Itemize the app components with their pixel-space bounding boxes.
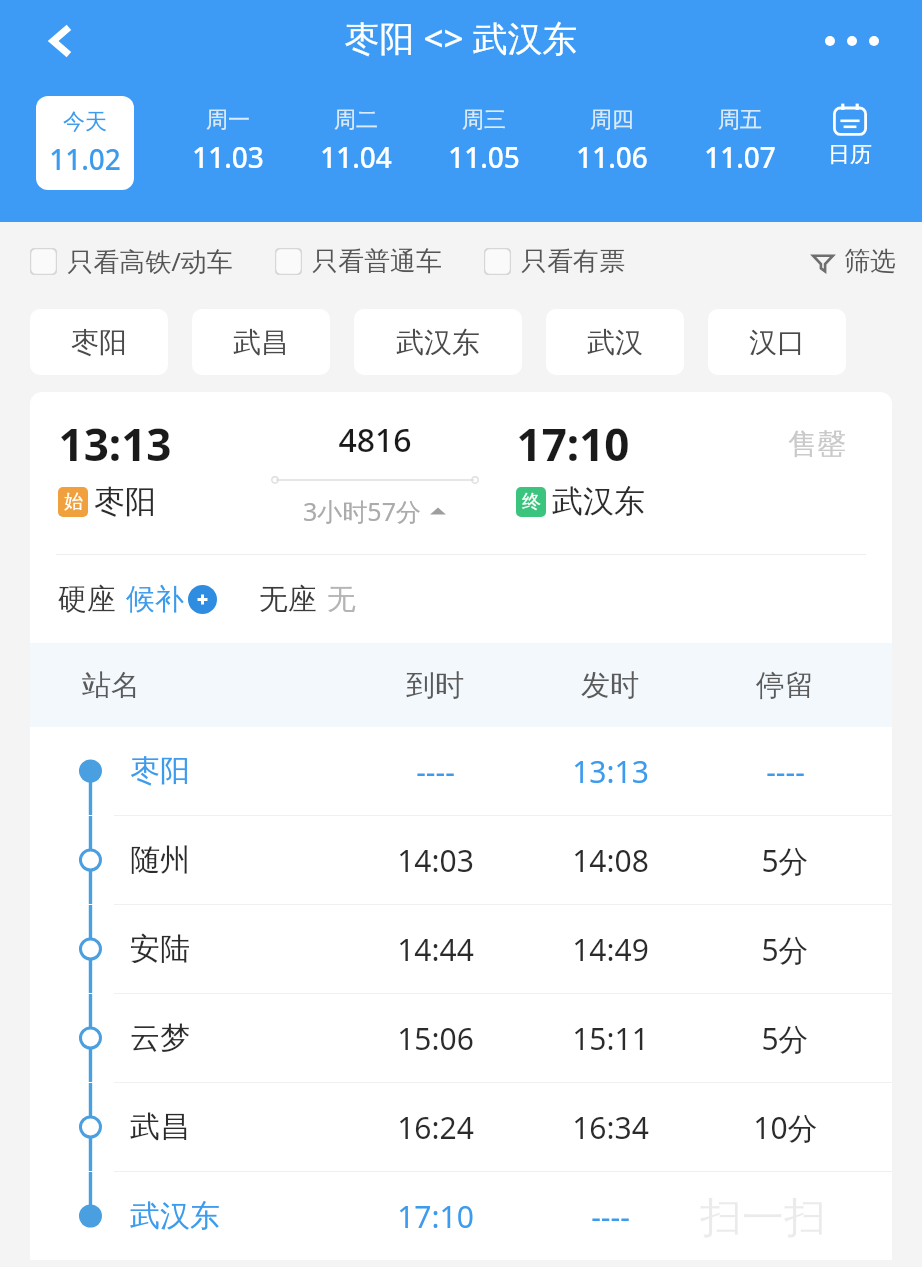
button[interactable]: 只看普通车 [275,237,442,286]
button[interactable]: Back [26,6,96,76]
staticText: 武汉东 [396,325,480,360]
staticText: 16:24 [397,1107,474,1148]
staticText: 站名 [82,667,140,704]
button[interactable]: 周四 [548,96,676,190]
staticText: 15:06 [397,1018,474,1059]
staticText: 4816 [338,418,412,462]
button[interactable]: 汉口 [708,309,846,375]
button[interactable]: 枣阳 [30,727,892,815]
staticText: 只看普通车 [312,245,442,278]
staticText: 到时 [406,667,464,704]
button[interactable]: 周二 [292,96,420,190]
button[interactable]: 随州 [30,816,892,904]
staticText: 11.07 [704,138,776,176]
button[interactable]: 武汉东 [354,309,522,375]
staticText: 14:08 [572,840,649,881]
staticText: 安陆 [130,930,190,968]
staticText: 候补 [126,581,184,618]
staticText: 14:44 [397,929,474,970]
staticText: 无座 [259,581,317,618]
staticText: ---- [416,751,455,792]
staticText: 停留 [756,667,814,704]
staticText: 3小时57分 [303,494,421,528]
staticText: 周二 [334,106,378,134]
staticText: 5分 [761,840,809,881]
staticText: 武昌 [130,1108,190,1146]
staticText: 武汉东 [130,1197,220,1235]
button[interactable]: 武汉 [546,309,684,375]
button[interactable]: 云梦 [30,994,892,1082]
staticText: 始 [64,490,83,514]
staticText: 5分 [761,1018,809,1059]
staticText: 武昌 [233,325,289,360]
staticText: 云梦 [130,1019,190,1057]
staticText: 11.06 [576,138,648,176]
staticText: 周四 [590,106,634,134]
staticText: 日历 [828,141,872,169]
staticText: 只看高铁/动车 [67,243,233,279]
staticText: 枣阳 [130,752,190,790]
staticText: 发时 [581,667,639,704]
staticText: 13:13 [58,414,172,474]
button[interactable]: 只看高铁/动车 [30,235,233,287]
staticText: 筛选 [844,245,896,278]
staticText: 硬座 [58,581,116,618]
button[interactable]: 周三 [420,96,548,190]
staticText: ---- [591,1196,630,1237]
staticText: 11.02 [49,140,121,178]
button[interactable]: 筛选 [804,237,902,286]
staticText: 14:03 [397,840,474,881]
staticText: 汉口 [749,325,805,360]
staticText: 终 [522,490,541,514]
staticText: 17:10 [397,1196,474,1237]
staticText: 武汉 [587,325,643,360]
staticText: 17:10 [516,414,630,474]
staticText: 11.04 [320,138,392,176]
button[interactable]: 武昌 [30,1083,892,1171]
staticText: 周三 [462,106,506,134]
staticText: 武汉东 [552,482,645,521]
button[interactable]: 今天 [36,96,134,190]
button[interactable]: More options [806,16,898,66]
staticText: 枣阳 <> 武汉东 [344,14,578,62]
staticText: 随州 [130,841,190,879]
staticText: 13:13 [572,751,649,792]
staticText: 16:34 [572,1107,649,1148]
button[interactable]: 武汉东 [30,1172,892,1260]
button[interactable]: 武昌 [192,309,330,375]
staticText: 11.03 [192,138,264,176]
button[interactable]: 安陆 [30,905,892,993]
button[interactable]: 枣阳 [30,309,168,375]
staticText: 5分 [761,929,809,970]
staticText: 售罄 [788,426,846,463]
button[interactable]: 周五 [676,96,804,190]
staticText: 今天 [63,108,107,136]
staticText: 11.05 [448,138,520,176]
staticText: 只看有票 [521,245,625,278]
staticText: ---- [766,751,805,792]
staticText: 枣阳 [71,325,127,360]
button[interactable]: 13:13 [30,392,892,554]
staticText: 15:11 [572,1018,649,1059]
staticText: 周五 [718,106,762,134]
staticText: 14:49 [572,929,649,970]
staticText: 枣阳 [94,482,156,521]
staticText: 无 [327,581,356,618]
button[interactable]: 周一 [164,96,292,190]
button[interactable]: 只看有票 [484,237,625,286]
staticText: 周一 [206,106,250,134]
staticText: 扫一扫 [700,1192,826,1245]
button[interactable]: 候补 [126,581,217,618]
button[interactable]: Calendar [804,96,896,190]
staticText: 10分 [753,1107,818,1148]
